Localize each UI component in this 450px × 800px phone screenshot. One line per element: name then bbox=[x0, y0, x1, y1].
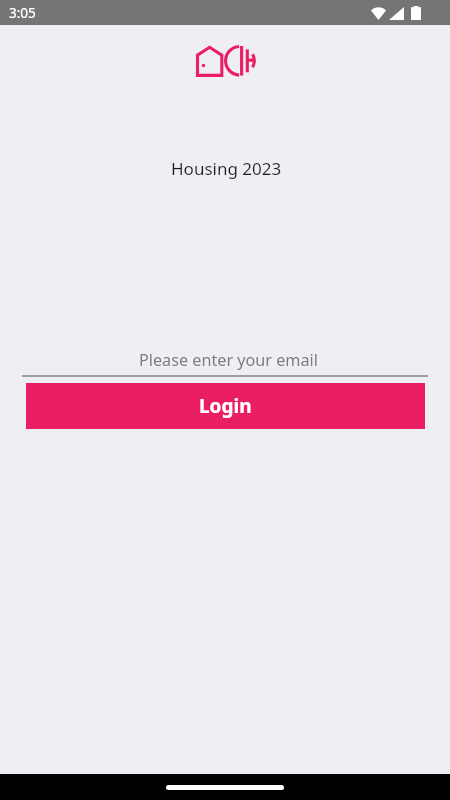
other: Housing app logo bbox=[196, 45, 450, 77]
button[interactable]: Please enter your email bbox=[0, 349, 450, 377]
button[interactable]: Login bbox=[26, 383, 425, 429]
staticText: Login bbox=[199, 393, 252, 419]
staticText: Housing 2023 bbox=[171, 157, 282, 180]
staticText: 3:05 bbox=[9, 4, 36, 22]
staticText: Please enter your email bbox=[139, 349, 318, 371]
